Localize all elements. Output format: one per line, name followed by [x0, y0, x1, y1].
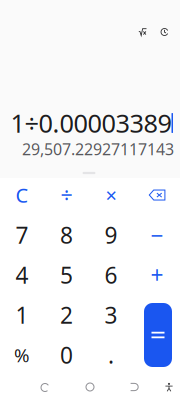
button[interactable]: −: [135, 215, 179, 255]
staticText: −: [150, 220, 163, 250]
button[interactable]: 4: [0, 255, 44, 295]
button[interactable]: Equals: [144, 303, 172, 367]
staticText: ÷: [60, 181, 72, 209]
button[interactable]: 3: [89, 295, 133, 335]
button[interactable]: 5: [44, 255, 88, 295]
button[interactable]: 2: [44, 295, 88, 335]
button[interactable]: +: [135, 255, 179, 295]
staticText: 29,507.22927117143: [22, 138, 174, 160]
staticText: 7: [15, 220, 28, 250]
button[interactable]: %: [0, 335, 44, 375]
button[interactable]: Scientific: [131, 21, 153, 43]
staticText: .: [108, 340, 114, 370]
button[interactable]: ÷: [44, 175, 88, 215]
button[interactable]: 1: [0, 295, 44, 335]
button[interactable]: 7: [0, 215, 44, 255]
button[interactable]: Home: [73, 376, 107, 398]
staticText: 8: [60, 220, 73, 250]
staticText: 6: [104, 260, 117, 290]
button[interactable]: 0: [44, 335, 88, 375]
button[interactable]: .: [89, 335, 133, 375]
button[interactable]: ×: [89, 175, 133, 215]
button[interactable]: Back: [28, 376, 62, 398]
staticText: 1÷0.00003389: [10, 106, 171, 140]
staticText: 2: [60, 300, 73, 330]
button[interactable]: Recent apps: [117, 376, 151, 398]
button[interactable]: 8: [44, 215, 88, 255]
staticText: ×: [105, 182, 116, 208]
staticText: 1: [15, 300, 28, 330]
staticText: +: [150, 260, 163, 290]
button[interactable]: 9: [89, 215, 133, 255]
staticText: %: [14, 343, 30, 367]
staticText: 9: [104, 220, 117, 250]
staticText: C: [15, 182, 28, 208]
staticText: 3: [104, 300, 117, 330]
staticText: 4: [15, 260, 28, 290]
button[interactable]: C: [0, 175, 44, 215]
button[interactable]: Delete: [135, 175, 179, 215]
staticText: 5: [60, 260, 73, 290]
button[interactable]: Accessibility: [157, 376, 180, 398]
staticText: 0: [60, 340, 73, 370]
button[interactable]: 6: [89, 255, 133, 295]
button[interactable]: History: [153, 21, 175, 43]
